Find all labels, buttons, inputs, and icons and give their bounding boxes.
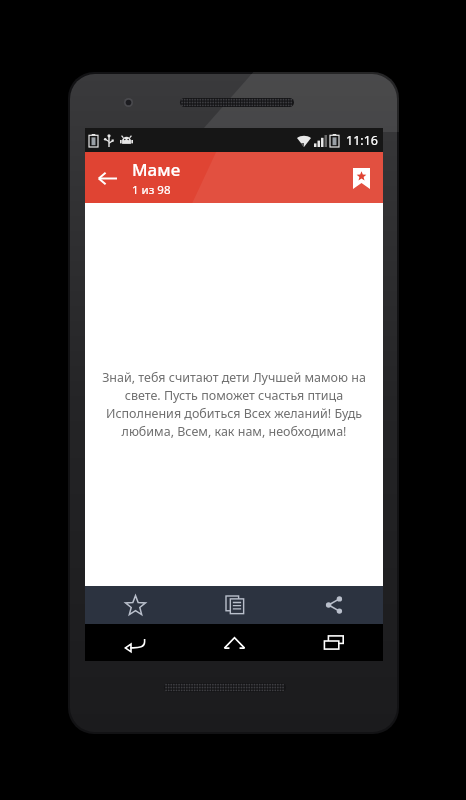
button[interactable]: Back [85,156,129,200]
button[interactable]: Copy [185,586,284,624]
staticText: 11:16 [346,132,378,149]
button[interactable]: Share [284,586,383,624]
staticText: Знай, тебя считают дети Лучшей мамою на … [99,369,369,440]
button[interactable]: Recents [284,624,383,661]
button[interactable]: Favorite [85,586,185,624]
button[interactable]: Home [185,624,284,661]
button[interactable]: Маме [132,158,181,198]
button[interactable]: Back [85,624,185,661]
staticText: Маме [132,158,181,181]
staticText: 1 из 98 [132,182,171,198]
button[interactable]: Bookmark [339,156,383,200]
